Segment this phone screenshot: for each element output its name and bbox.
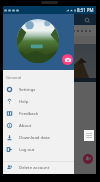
staticText: 8:51 PM bbox=[77, 7, 94, 13]
button[interactable]: Delete account bbox=[3, 161, 74, 173]
button[interactable] bbox=[84, 130, 94, 141]
button[interactable]: About bbox=[3, 119, 74, 131]
staticText: General bbox=[6, 75, 22, 81]
button[interactable]: Add person bbox=[83, 154, 93, 164]
button[interactable]: Feedback bbox=[3, 107, 74, 119]
button[interactable]: Download data bbox=[3, 131, 74, 143]
staticText: Download data bbox=[19, 134, 50, 140]
button[interactable]: Search bbox=[84, 17, 91, 24]
staticText: Help bbox=[19, 98, 29, 104]
button[interactable]: Help bbox=[3, 95, 74, 107]
staticText: Settings bbox=[19, 86, 36, 92]
staticText: Feedback bbox=[19, 110, 39, 116]
staticText: About bbox=[19, 122, 32, 128]
button[interactable]: Change profile photo bbox=[62, 54, 73, 65]
button[interactable]: Log out bbox=[3, 143, 74, 155]
staticText: Log out bbox=[19, 146, 35, 152]
button[interactable]: Settings bbox=[3, 83, 74, 95]
staticText: Delete account bbox=[19, 164, 50, 170]
